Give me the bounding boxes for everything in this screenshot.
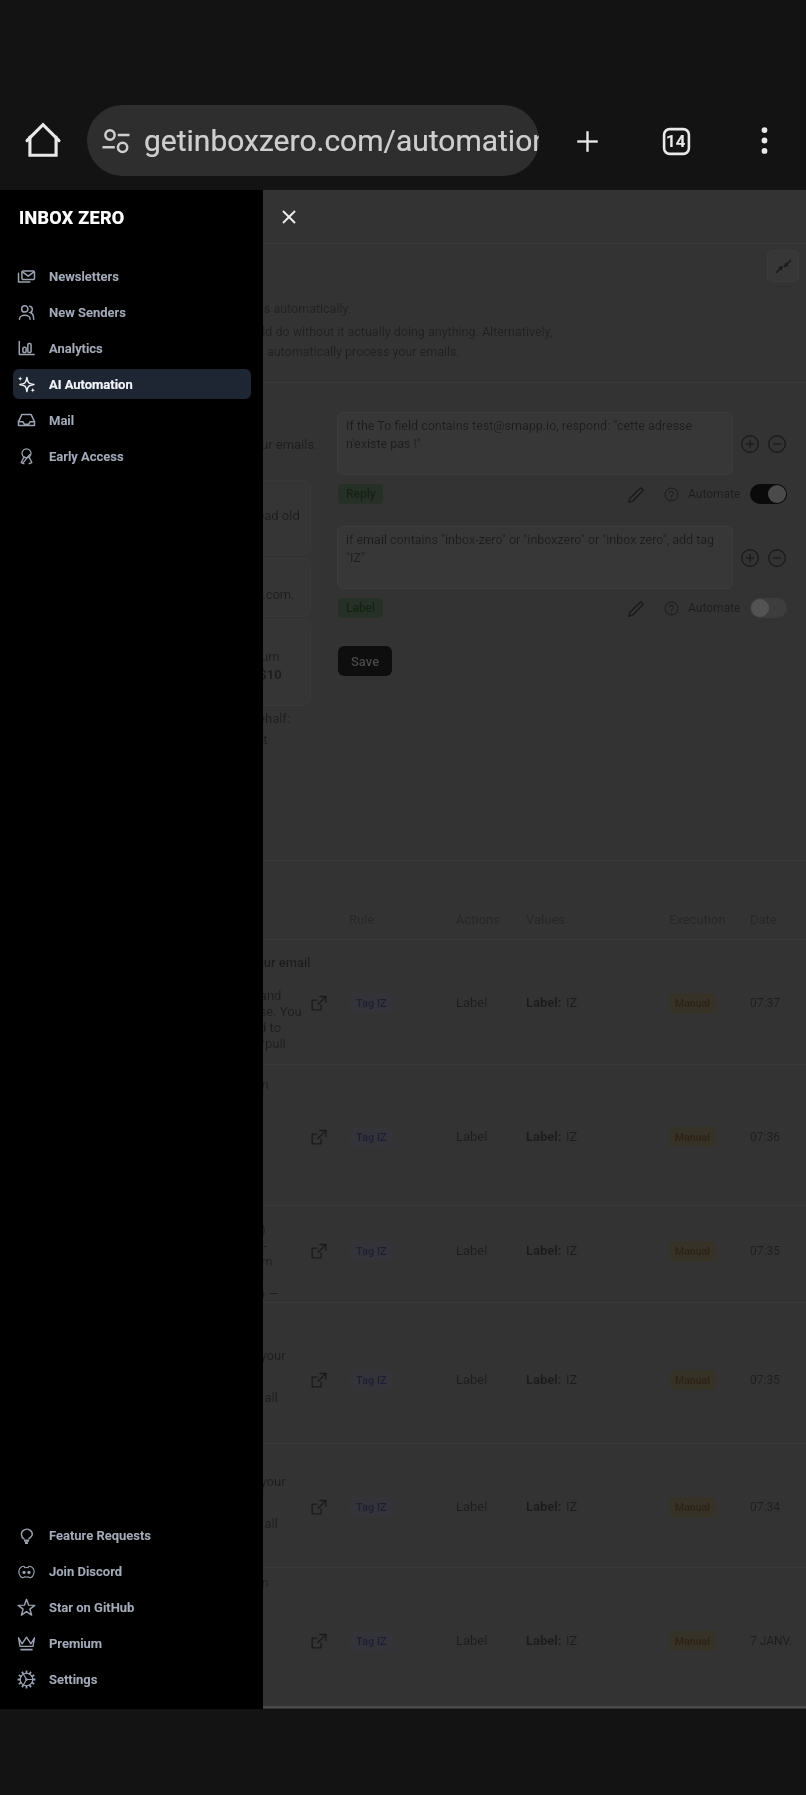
staticText: ade your xyxy=(236,1474,286,1489)
staticText: 14 xyxy=(666,131,686,151)
staticText: IZ xyxy=(566,1243,578,1258)
button[interactable]: Feature Requests xyxy=(13,1520,251,1550)
staticText: Manual xyxy=(675,1501,710,1513)
button[interactable]: Automate toggle xyxy=(750,598,787,618)
staticText: plan xyxy=(244,1077,269,1092)
staticText: Automate xyxy=(688,601,741,615)
staticText: Rule xyxy=(349,912,375,927)
staticText: Label xyxy=(456,1499,488,1514)
staticText: Reply xyxy=(346,487,376,501)
button[interactable]: If the To field contains test@smapp.io, … xyxy=(337,412,733,475)
button[interactable]: New Senders xyxy=(13,297,251,327)
staticText: Label xyxy=(346,601,376,615)
staticText: 07:36 xyxy=(750,1130,780,1144)
staticText: "IZ" xyxy=(346,550,365,565)
staticText: New Senders xyxy=(49,305,126,320)
button[interactable]: Settings xyxy=(13,1664,251,1694)
button[interactable]: Add rule xyxy=(741,435,759,453)
staticText: Tag IZ xyxy=(356,1501,387,1514)
button[interactable]: Tag IZ xyxy=(350,1370,392,1390)
button[interactable]: Add rule xyxy=(741,549,759,567)
button[interactable]: Early Access xyxy=(13,441,251,471)
button[interactable]: Open email xyxy=(310,1371,328,1389)
staticText: premium xyxy=(228,649,280,664)
staticText: Join Discord xyxy=(49,1564,123,1579)
button[interactable]: Reply xyxy=(338,484,383,504)
button[interactable]: Analytics xyxy=(13,333,251,363)
button[interactable]: Join Discord xyxy=(13,1556,251,1586)
staticText: phase. You xyxy=(238,1004,302,1019)
button[interactable]: Tag IZ xyxy=(350,1497,392,1517)
button[interactable]: Automate toggle xyxy=(750,484,787,504)
staticText: ro.com xyxy=(232,1254,273,1269)
staticText: mapp — xyxy=(232,1286,279,1301)
button[interactable]: if email contains "inbox-zero" or "inbox… xyxy=(337,526,733,589)
button[interactable]: Mail xyxy=(13,405,251,435)
button[interactable]: Tag IZ xyxy=(350,1241,392,1261)
staticText: Label: xyxy=(526,1372,562,1387)
button[interactable]: Collapse xyxy=(767,250,799,282)
staticText: Newsletters xyxy=(49,269,119,284)
button[interactable]: Close menu xyxy=(265,193,313,241)
button[interactable]: Label xyxy=(338,598,383,618)
staticText: 07:34 xyxy=(750,1500,780,1514)
staticText: Label: xyxy=(526,1633,562,1648)
staticText: you can enable automation and it will au… xyxy=(58,344,460,359)
staticText: 07:37 xyxy=(750,996,780,1010)
staticText: your email xyxy=(250,955,311,970)
button[interactable]: Premium xyxy=(13,1628,251,1658)
staticText: a draft xyxy=(230,732,268,747)
staticText: 7 JANV. xyxy=(750,1634,793,1648)
button[interactable]: Tabs xyxy=(650,115,702,167)
button[interactable]: Edit rule xyxy=(628,487,644,503)
staticText: Early Access xyxy=(49,449,124,464)
staticText: These are the rules for your emails. xyxy=(12,390,215,405)
button[interactable]: Home xyxy=(17,114,69,166)
button[interactable]: Edit rule xyxy=(628,601,644,617)
button[interactable]: Open email xyxy=(310,1128,328,1146)
staticText: AI Automation xyxy=(49,377,133,392)
staticText: IZ xyxy=(566,1633,578,1648)
button[interactable]: Star on GitHub xyxy=(13,1592,251,1622)
button[interactable]: Remove rule xyxy=(768,549,786,567)
staticText: Label: xyxy=(526,995,562,1010)
staticText: each $10 xyxy=(228,667,282,682)
button[interactable]: AI Automation xyxy=(13,369,251,399)
staticText: 07:35 xyxy=(750,1373,780,1387)
staticText: Label xyxy=(456,1243,488,1258)
staticText: @news.com. xyxy=(220,587,295,602)
staticText: 07:35 xyxy=(750,1244,780,1258)
staticText: Test the rules to see what the AI would … xyxy=(58,324,553,339)
staticText: Tag IZ xyxy=(356,997,387,1010)
button[interactable]: Tag IZ xyxy=(350,993,392,1013)
button[interactable]: More options xyxy=(738,114,790,166)
staticText: nbox- xyxy=(232,1270,264,1285)
staticText: as read old xyxy=(236,508,300,523)
button[interactable]: Open email xyxy=(310,1242,328,1260)
staticText: Label: xyxy=(526,1129,562,1144)
button[interactable]: Tag IZ xyxy=(350,1127,392,1147)
staticText: my behalf: xyxy=(230,711,291,726)
staticText: Label xyxy=(456,1372,488,1387)
button[interactable]: Open email xyxy=(310,1632,328,1650)
button[interactable]: Save xyxy=(338,646,392,676)
button[interactable]: New tab xyxy=(561,115,613,167)
staticText: if email contains "inbox-zero" or "inbox… xyxy=(346,532,715,547)
staticText: Feature Requests xyxy=(49,1528,151,1543)
staticText: Label xyxy=(456,995,488,1010)
staticText: ade your xyxy=(236,1348,286,1363)
button[interactable]: getinboxzero.com/automation xyxy=(87,105,539,176)
staticText: Date xyxy=(750,912,777,927)
staticText: Mail xyxy=(49,413,75,428)
button[interactable]: Open email xyxy=(310,994,328,1012)
staticText: Settings xyxy=(49,1672,98,1687)
button[interactable]: Open email xyxy=(310,1498,328,1516)
button[interactable]: Tag IZ xyxy=(350,1631,392,1651)
button[interactable]: Newsletters xyxy=(13,261,251,291)
staticText: getinboxzero.com/automation xyxy=(144,123,539,158)
staticText: hub/pull xyxy=(238,1036,286,1051)
button[interactable]: Remove rule xyxy=(768,435,786,453)
staticText: IZ xyxy=(566,1372,578,1387)
staticText: 68d2) xyxy=(232,1222,266,1237)
staticText: Actions xyxy=(456,912,501,927)
